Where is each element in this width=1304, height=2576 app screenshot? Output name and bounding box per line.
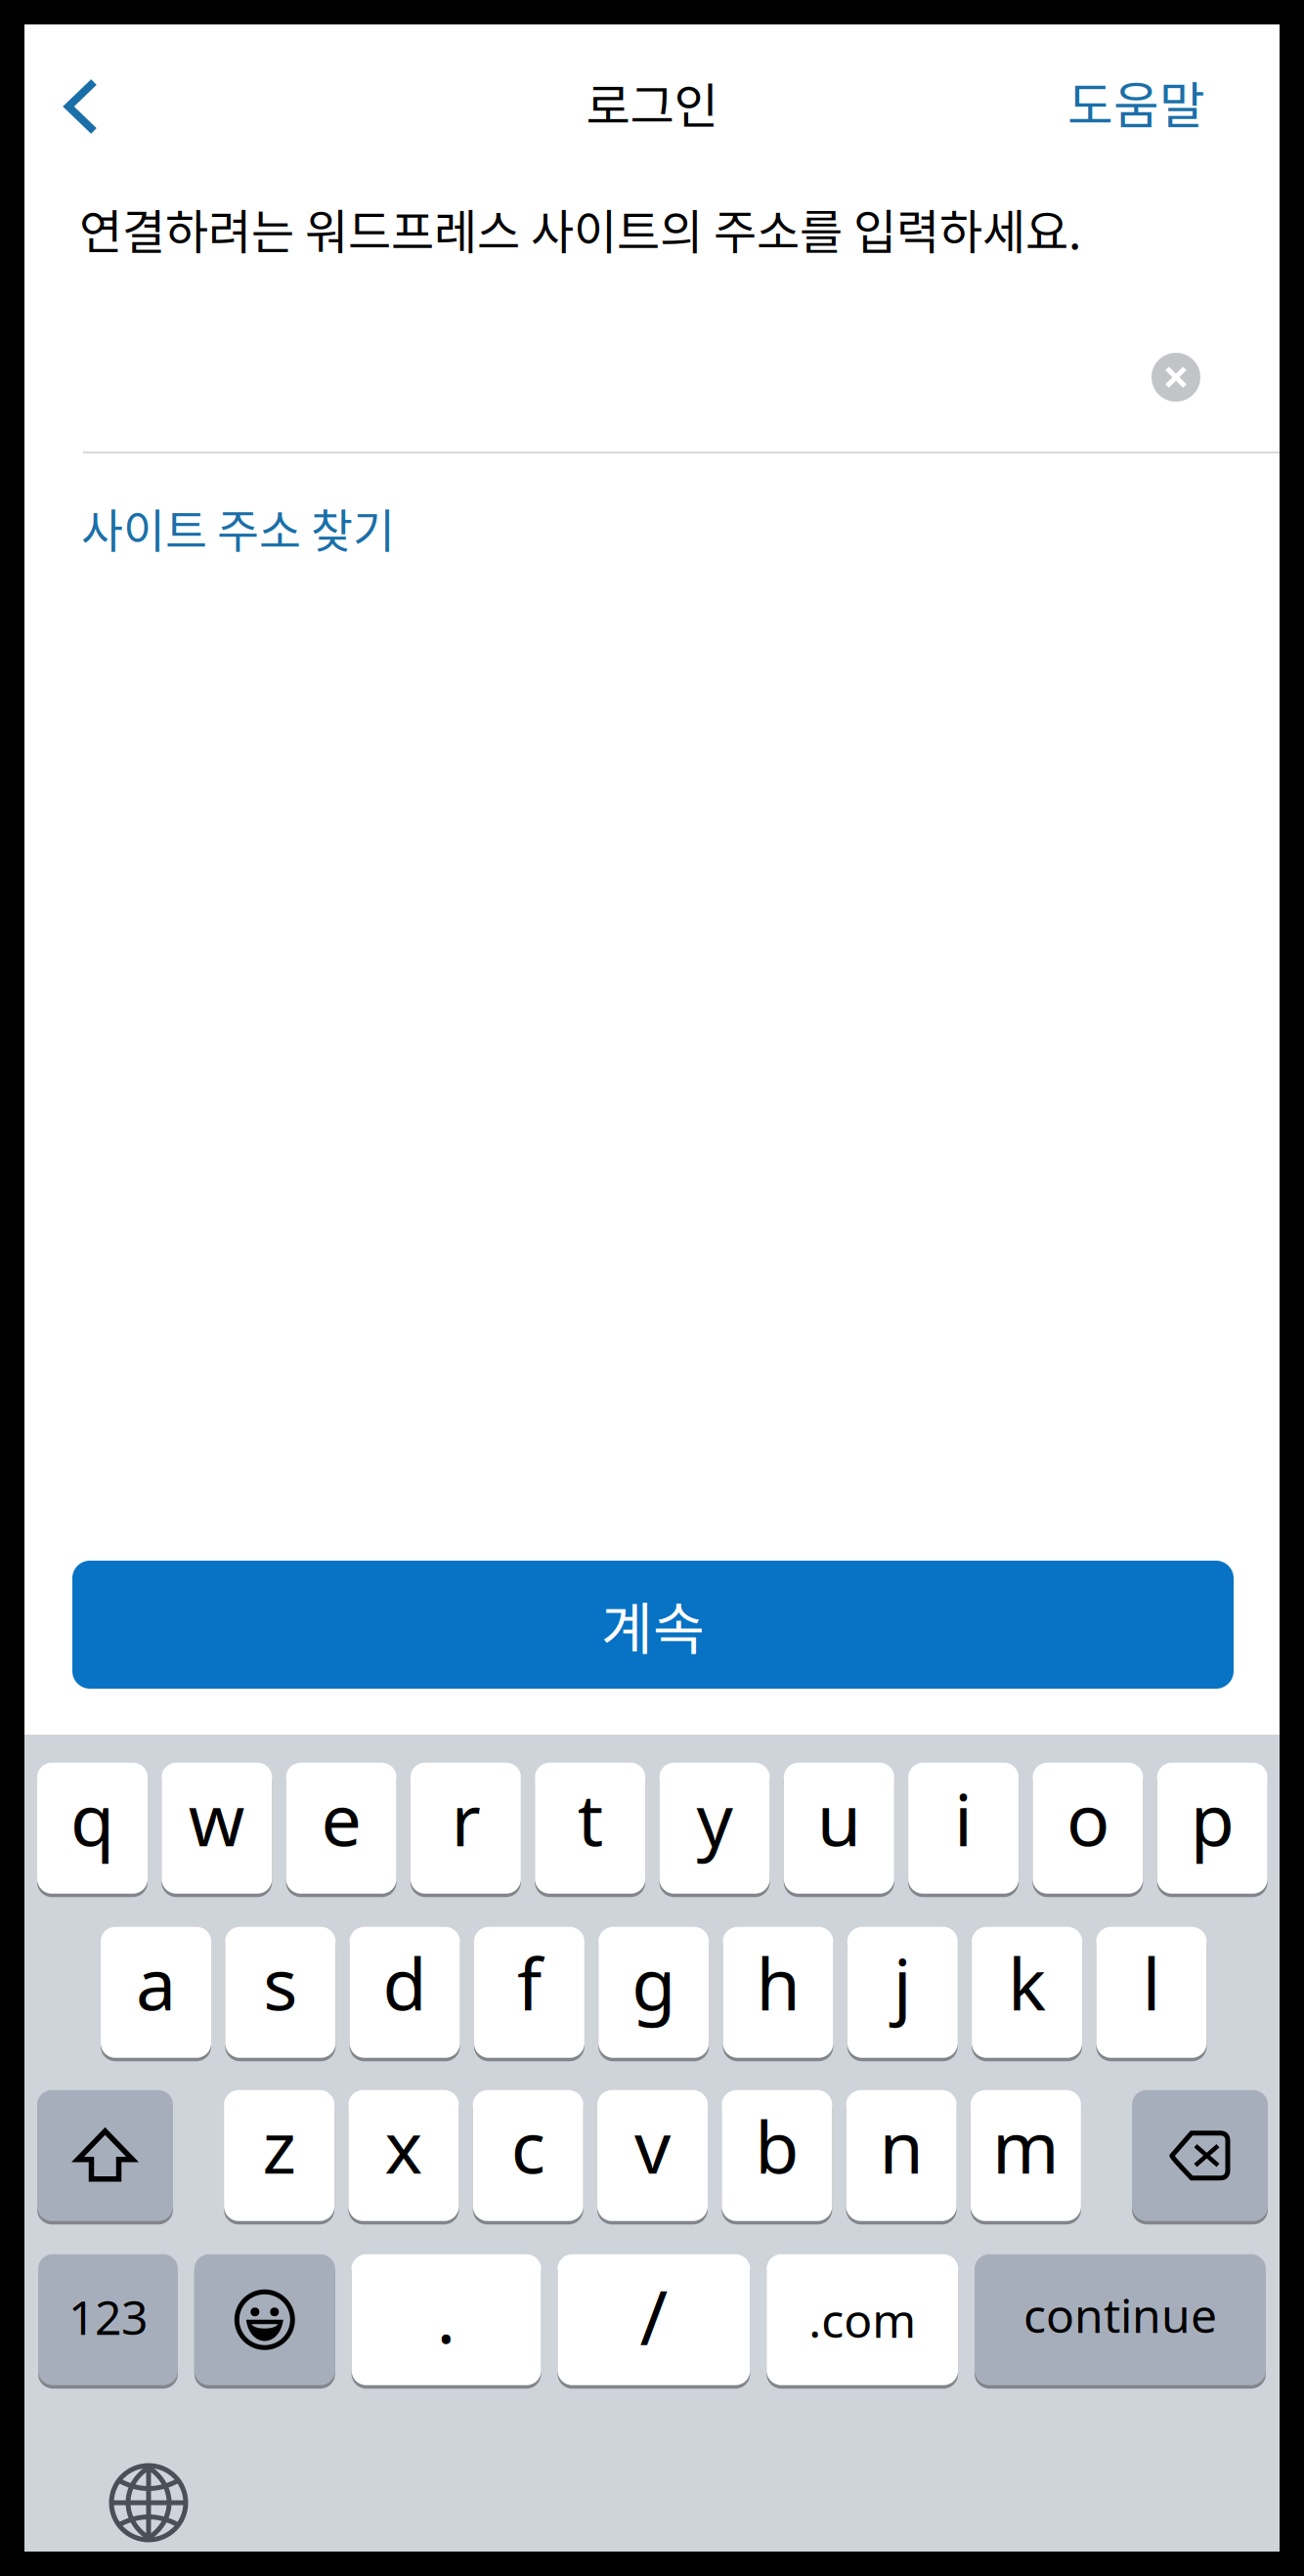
button[interactable]: Shift bbox=[37, 2088, 173, 2223]
staticText: c bbox=[511, 2098, 545, 2193]
button[interactable]: l bbox=[1096, 1925, 1207, 2060]
button[interactable]: s bbox=[225, 1925, 336, 2060]
staticText: k bbox=[1008, 1935, 1046, 2030]
button[interactable]: q bbox=[37, 1761, 148, 1895]
button[interactable]: z bbox=[224, 2088, 334, 2223]
staticText: w bbox=[188, 1771, 245, 1866]
staticText: 123 bbox=[68, 2286, 148, 2348]
button[interactable]: b bbox=[722, 2088, 832, 2223]
staticText: i bbox=[954, 1771, 973, 1866]
button[interactable]: Next keyboard bbox=[90, 2444, 207, 2561]
staticText: m bbox=[992, 2098, 1060, 2193]
staticText: s bbox=[263, 1935, 297, 2030]
button[interactable]: r bbox=[410, 1761, 521, 1895]
staticText: 계속 bbox=[601, 1584, 705, 1665]
staticText: e bbox=[321, 1771, 361, 1866]
button[interactable]: Back bbox=[34, 54, 128, 161]
staticText: a bbox=[136, 1935, 176, 2030]
staticText: 로그인 bbox=[586, 67, 718, 137]
button[interactable]: t bbox=[535, 1761, 645, 1895]
button[interactable]: x bbox=[348, 2088, 459, 2223]
button[interactable]: Emoji bbox=[194, 2253, 335, 2387]
staticText: 연결하려는 워드프레스 사이트의 주소를 입력하세요. bbox=[79, 194, 1081, 262]
button[interactable]: 계속 bbox=[72, 1561, 1234, 1689]
button[interactable]: g bbox=[598, 1925, 709, 2060]
staticText: b bbox=[755, 2098, 799, 2193]
button[interactable]: w bbox=[162, 1761, 272, 1895]
button[interactable]: j bbox=[847, 1925, 958, 2060]
staticText: o bbox=[1066, 1771, 1109, 1866]
button[interactable]: k bbox=[972, 1925, 1082, 2060]
button[interactable]: / bbox=[558, 2253, 750, 2387]
staticText: 사이트 주소 찾기 bbox=[81, 494, 395, 561]
button[interactable]: p bbox=[1157, 1761, 1268, 1895]
staticText: f bbox=[517, 1935, 541, 2030]
staticText: n bbox=[879, 2098, 923, 2193]
staticText: v bbox=[634, 2098, 671, 2193]
button[interactable]: u bbox=[784, 1761, 894, 1895]
button[interactable]: c bbox=[473, 2088, 583, 2223]
staticText: l bbox=[1142, 1935, 1161, 2030]
button[interactable]: v bbox=[597, 2088, 708, 2223]
button[interactable]: e bbox=[286, 1761, 396, 1895]
staticText: z bbox=[263, 2098, 296, 2193]
staticText: . bbox=[437, 2268, 456, 2363]
staticText: r bbox=[451, 1771, 480, 1866]
button[interactable]: f bbox=[474, 1925, 584, 2060]
staticText: t bbox=[577, 1771, 603, 1866]
staticText: u bbox=[817, 1771, 861, 1866]
staticText: .com bbox=[809, 2289, 916, 2351]
button[interactable]: 사이트 주소 찾기 bbox=[77, 477, 399, 578]
button[interactable]: m bbox=[971, 2088, 1081, 2223]
staticText: g bbox=[632, 1935, 676, 2030]
staticText: y bbox=[696, 1771, 733, 1866]
button[interactable]: .com bbox=[767, 2253, 958, 2387]
button[interactable]: . bbox=[352, 2253, 541, 2387]
button[interactable]: n bbox=[846, 2088, 957, 2223]
staticText: p bbox=[1190, 1771, 1234, 1866]
button[interactable]: y bbox=[659, 1761, 770, 1895]
button[interactable]: 123 bbox=[38, 2253, 178, 2387]
staticText: j bbox=[893, 1935, 912, 2030]
button[interactable]: Clear text bbox=[1131, 332, 1221, 422]
staticText: q bbox=[70, 1771, 114, 1866]
button[interactable]: continue bbox=[975, 2253, 1266, 2387]
staticText: x bbox=[385, 2098, 423, 2193]
button[interactable]: o bbox=[1033, 1761, 1143, 1895]
staticText: h bbox=[756, 1935, 800, 2030]
staticText: d bbox=[383, 1935, 427, 2030]
staticText: / bbox=[640, 2266, 668, 2366]
button[interactable]: Site address bbox=[83, 293, 1280, 451]
staticText: 도움말 bbox=[1067, 66, 1205, 138]
button[interactable]: 도움말 bbox=[1042, 40, 1231, 165]
button[interactable]: a bbox=[101, 1925, 211, 2060]
staticText: continue bbox=[1023, 2284, 1217, 2346]
button[interactable]: d bbox=[350, 1925, 460, 2060]
button[interactable]: i bbox=[908, 1761, 1019, 1895]
button[interactable]: h bbox=[723, 1925, 833, 2060]
button[interactable]: Delete bbox=[1132, 2088, 1268, 2223]
